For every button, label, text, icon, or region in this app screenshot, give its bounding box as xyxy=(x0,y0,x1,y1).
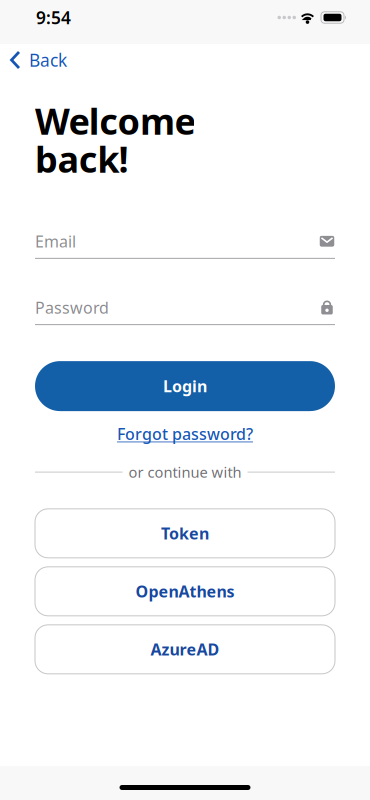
staticText: Welcome xyxy=(35,97,195,145)
staticText: OpenAthens xyxy=(135,581,234,602)
button[interactable]: Login xyxy=(35,361,335,411)
staticText: Forgot password? xyxy=(117,423,253,444)
staticText: Password xyxy=(35,297,109,318)
button[interactable]: Back xyxy=(10,48,67,71)
staticText: Login xyxy=(163,375,207,397)
staticText: back! xyxy=(35,135,129,183)
staticText: 9:54 xyxy=(36,6,71,29)
staticText: Back xyxy=(29,48,67,71)
staticText: Token xyxy=(161,523,209,544)
button[interactable]: Token xyxy=(35,509,335,558)
button[interactable]: OpenAthens xyxy=(35,567,335,616)
button[interactable]: Email xyxy=(35,231,335,259)
button[interactable]: Password xyxy=(35,297,335,325)
staticText: Email xyxy=(35,231,76,252)
button[interactable]: Forgot password? xyxy=(117,423,253,444)
button[interactable]: AzureAD xyxy=(35,625,335,674)
staticText: or continue with xyxy=(128,462,241,482)
staticText: AzureAD xyxy=(150,639,219,660)
